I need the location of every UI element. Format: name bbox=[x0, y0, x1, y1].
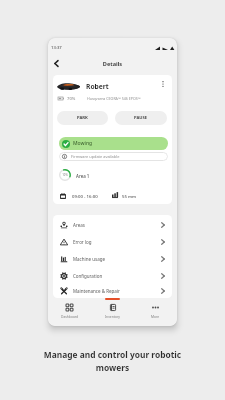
staticText: PARK bbox=[77, 115, 88, 121]
button[interactable]: Configuration bbox=[53, 267, 172, 284]
button[interactable]: Machine usage bbox=[53, 250, 172, 267]
button[interactable]: Inventory bbox=[91, 298, 134, 326]
staticText: Inventory bbox=[105, 314, 120, 318]
staticText: Error log bbox=[73, 239, 92, 245]
staticText: 13:37 bbox=[51, 45, 62, 51]
staticText: 55 mm bbox=[122, 193, 137, 199]
button[interactable]: More options bbox=[158, 79, 168, 89]
staticText: Manage and control your robotic mowers bbox=[0, 349, 225, 373]
staticText: Configuration bbox=[73, 273, 103, 279]
button[interactable]: Error log bbox=[53, 233, 172, 250]
staticText: Mowing bbox=[73, 140, 93, 147]
button[interactable]: Back bbox=[49, 56, 63, 70]
staticText: Dashboard bbox=[61, 314, 79, 318]
staticText: Areas bbox=[73, 222, 85, 228]
button[interactable]: Firmware update available bbox=[59, 152, 168, 161]
button[interactable]: More bbox=[134, 298, 177, 326]
staticText: 09:00 - 16:00 bbox=[72, 193, 98, 199]
staticText: More bbox=[151, 314, 160, 318]
staticText: Details bbox=[48, 60, 177, 68]
staticText: Husqvarna CEORA™ 546 EPOS™ bbox=[87, 96, 141, 101]
staticText: Firmware update available bbox=[71, 154, 120, 159]
staticText: 70% bbox=[67, 96, 76, 102]
staticText: PAUSE bbox=[134, 115, 148, 121]
staticText: Area 1 bbox=[76, 173, 90, 179]
staticText: 10% bbox=[60, 173, 70, 177]
button[interactable]: Areas bbox=[53, 216, 172, 233]
button[interactable]: Dashboard bbox=[48, 298, 91, 326]
staticText: Maintenance & Repair bbox=[73, 288, 120, 294]
staticText: Machine usage bbox=[73, 256, 105, 262]
staticText: Robert bbox=[86, 82, 109, 91]
button[interactable]: Mowing bbox=[59, 137, 168, 150]
button[interactable]: PAUSE bbox=[115, 111, 167, 125]
button[interactable]: Maintenance & Repair bbox=[53, 284, 172, 298]
button[interactable]: PARK bbox=[57, 111, 108, 125]
